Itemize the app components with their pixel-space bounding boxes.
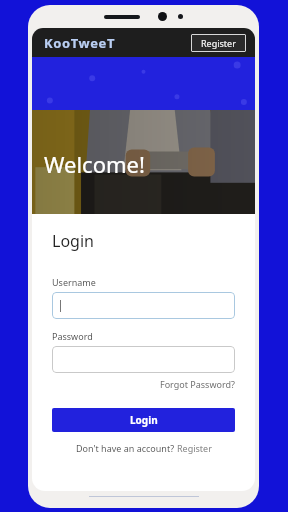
staticText: Password bbox=[52, 330, 93, 342]
staticText: Username bbox=[52, 276, 96, 288]
staticText: Register bbox=[177, 442, 212, 454]
staticText: Welcome! bbox=[44, 149, 145, 179]
staticText: Don't have an account? bbox=[76, 442, 177, 454]
button[interactable]: Login bbox=[52, 408, 235, 432]
staticText: KooTweeT bbox=[44, 34, 116, 52]
button[interactable] bbox=[52, 346, 235, 373]
button[interactable]: Register bbox=[177, 442, 212, 454]
button[interactable] bbox=[52, 292, 235, 319]
button[interactable]: Forgot Password? bbox=[160, 378, 235, 390]
staticText: Forgot Password? bbox=[160, 378, 235, 390]
staticText: Register bbox=[201, 37, 236, 49]
staticText: Login bbox=[130, 413, 158, 427]
staticText: Login bbox=[52, 230, 94, 252]
button[interactable]: Register bbox=[191, 34, 246, 52]
